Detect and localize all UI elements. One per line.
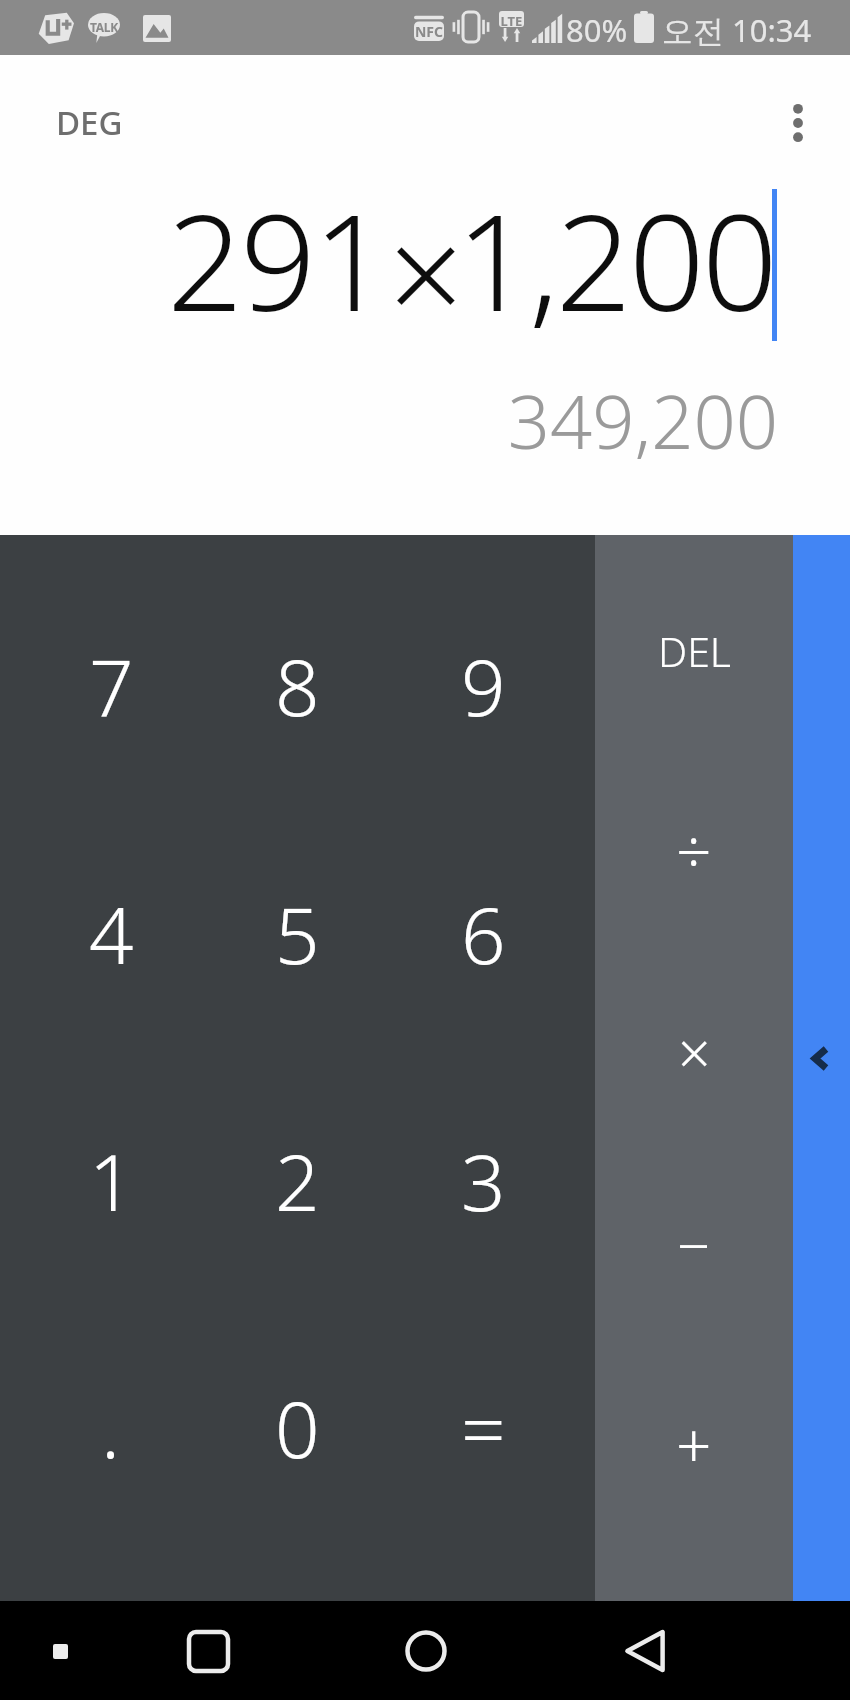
button[interactable]: 0 xyxy=(204,1304,390,1551)
button[interactable]: 1 xyxy=(18,1057,204,1304)
button[interactable]: − xyxy=(595,1145,793,1343)
staticText: NFC xyxy=(414,22,444,41)
staticText: × xyxy=(388,181,461,362)
staticText: 7 xyxy=(89,633,134,739)
button[interactable]: 7 xyxy=(18,562,204,810)
button[interactable]: More options xyxy=(774,75,822,171)
staticText: 1 xyxy=(89,1128,134,1234)
staticText: DEG xyxy=(56,100,123,145)
button[interactable]: + xyxy=(595,1345,793,1543)
staticText: 6 xyxy=(461,881,506,987)
button[interactable]: × xyxy=(595,953,793,1151)
staticText: 오전 10:34 xyxy=(662,9,812,51)
staticText: 8 xyxy=(275,633,320,739)
staticText: − xyxy=(677,1205,711,1284)
staticText: 5 xyxy=(275,881,320,987)
button[interactable]: Hide keyboard xyxy=(30,1621,90,1681)
button[interactable]: 8 xyxy=(204,562,390,810)
button[interactable]: 9 xyxy=(390,562,576,810)
button[interactable]: . xyxy=(18,1304,204,1551)
button[interactable]: Home xyxy=(396,1621,456,1681)
staticText: . xyxy=(101,1375,121,1481)
button[interactable]: 4 xyxy=(18,810,204,1057)
button[interactable]: 2 xyxy=(204,1057,390,1304)
staticText: 349,200 xyxy=(0,370,778,471)
staticText: LTE xyxy=(499,12,524,30)
button[interactable]: DEL xyxy=(595,552,793,750)
button[interactable]: Calculator display xyxy=(0,0,850,535)
staticText: DEL xyxy=(658,623,731,679)
staticText: 3 xyxy=(461,1128,506,1234)
button[interactable]: 5 xyxy=(204,810,390,1057)
button[interactable]: 6 xyxy=(390,810,576,1057)
staticText: TALK xyxy=(88,19,120,35)
staticText: = xyxy=(461,1375,506,1481)
button[interactable]: = xyxy=(390,1304,576,1551)
button[interactable]: ÷ xyxy=(595,751,793,949)
staticText: 2 xyxy=(275,1128,320,1234)
button[interactable]: 3 xyxy=(390,1057,576,1304)
button[interactable]: Back xyxy=(615,1621,675,1681)
staticText: 9 xyxy=(461,633,506,739)
staticText: 291 xyxy=(167,169,386,350)
button[interactable]: Expand scientific pad xyxy=(793,535,850,1601)
staticText: 1,200 xyxy=(456,169,775,350)
staticText: ÷ xyxy=(676,808,712,892)
button[interactable]: Recent apps xyxy=(178,1621,238,1681)
staticText: 4 xyxy=(89,881,134,987)
staticText: 0 xyxy=(275,1375,320,1481)
staticText: + xyxy=(676,1402,712,1486)
staticText: 80% xyxy=(566,9,628,51)
staticText: × xyxy=(678,1013,711,1091)
